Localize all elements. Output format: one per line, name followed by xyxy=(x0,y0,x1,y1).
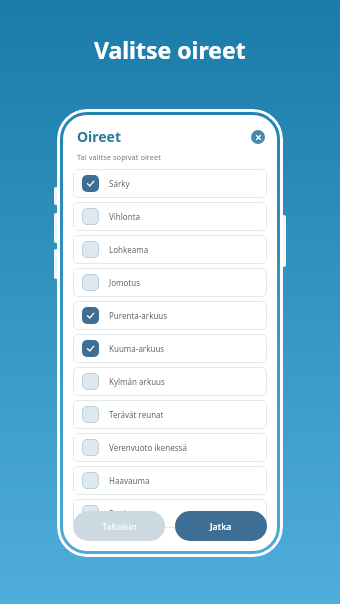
button[interactable]: Patti suussa xyxy=(73,499,267,528)
staticText: Purenta-arkuus xyxy=(109,310,168,321)
staticText: Kuuma-arkuus xyxy=(109,343,165,354)
button[interactable]: Kuuma-arkuus xyxy=(73,334,267,363)
staticText: Jatka xyxy=(210,520,232,532)
staticText: Valitse oireet xyxy=(94,34,246,65)
staticText: Patti suussa xyxy=(109,508,155,519)
button[interactable]: Jomotus xyxy=(73,268,267,297)
staticText: Terävät reunat xyxy=(109,409,164,420)
button[interactable]: Takaisin xyxy=(73,511,165,541)
staticText: Lohkeama xyxy=(109,244,149,255)
staticText: Jomotus xyxy=(109,277,141,288)
button[interactable]: Purenta-arkuus xyxy=(73,301,267,330)
button[interactable]: Sulje xyxy=(251,130,265,144)
button[interactable]: Kylmän arkuus xyxy=(73,367,267,396)
staticText: Oireet xyxy=(77,127,122,146)
staticText: Tai valitse sopivat oireet xyxy=(77,152,161,162)
button[interactable]: Jatka xyxy=(175,511,267,541)
staticText: Verenvuoto ikenessä xyxy=(109,442,187,453)
staticText: Haavauma xyxy=(109,475,150,486)
button[interactable]: Lohkeama xyxy=(73,235,267,264)
button[interactable]: Terävät reunat xyxy=(73,400,267,429)
button[interactable]: Verenvuoto ikenessä xyxy=(73,433,267,462)
button[interactable]: Särky xyxy=(73,169,267,198)
staticText: Särky xyxy=(109,178,130,189)
staticText: Takaisin xyxy=(102,520,137,532)
button[interactable]: Haavauma xyxy=(73,466,267,495)
staticText: Vihlonta xyxy=(109,211,141,222)
button[interactable]: Vihlonta xyxy=(73,202,267,231)
staticText: Kylmän arkuus xyxy=(109,376,165,387)
